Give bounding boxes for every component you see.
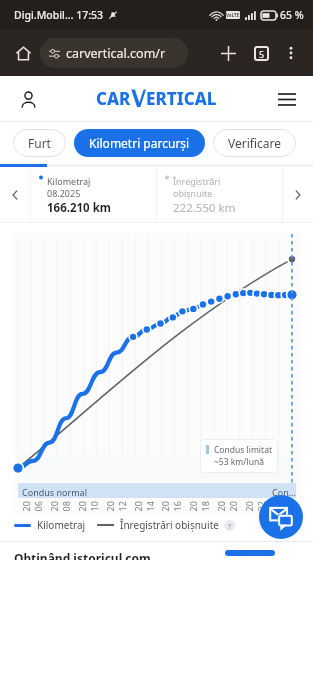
staticText: Kilometraj bbox=[47, 175, 91, 187]
staticText: Condus normal bbox=[22, 486, 87, 498]
staticText: 2016 bbox=[158, 496, 182, 511]
staticText: 2008 bbox=[47, 496, 71, 511]
button[interactable]: New tab bbox=[214, 39, 242, 67]
button[interactable]: Home bbox=[8, 38, 38, 68]
staticText: 2024 bbox=[270, 496, 294, 511]
staticText: Kilometri parcurși bbox=[89, 135, 190, 151]
button[interactable]: More options bbox=[277, 39, 305, 67]
button[interactable]: Tabs: 5 bbox=[247, 39, 275, 67]
staticText: Kilometraj bbox=[37, 518, 86, 532]
staticText: 166.210 km bbox=[47, 200, 112, 216]
staticText: ERTICAL bbox=[146, 87, 217, 110]
staticText: Condus limitat bbox=[214, 444, 272, 456]
staticText: 2014 bbox=[131, 496, 155, 511]
button[interactable]: Help bbox=[224, 520, 235, 531]
staticText: 2012 bbox=[103, 496, 127, 511]
staticText: carvertical.com/r bbox=[66, 45, 166, 62]
button[interactable]: Next bbox=[283, 167, 313, 222]
staticText: VoLTE bbox=[226, 12, 240, 18]
staticText: Con… bbox=[272, 486, 296, 498]
button[interactable]: Contact support bbox=[259, 495, 303, 539]
staticText: obișnuite bbox=[173, 187, 213, 199]
button[interactable]: Account bbox=[14, 85, 42, 113]
staticText: 2010 bbox=[75, 496, 99, 511]
staticText: Înregistrări obișnuite bbox=[120, 518, 219, 532]
staticText: CAR bbox=[96, 87, 131, 110]
staticText: 2006 bbox=[19, 496, 43, 511]
button[interactable]: Verificare bbox=[213, 129, 296, 157]
staticText: 2018 bbox=[186, 496, 210, 511]
staticText: ? bbox=[228, 521, 232, 531]
button[interactable]: carvertical.com/r bbox=[40, 38, 188, 68]
staticText: 222.550 km bbox=[173, 200, 236, 216]
staticText: 65 % bbox=[280, 8, 304, 22]
button[interactable]: Furt bbox=[13, 129, 66, 157]
staticText: 5 bbox=[259, 48, 265, 60]
button[interactable]: Înregistrări bbox=[157, 167, 282, 222]
staticText: 2022 bbox=[242, 496, 266, 511]
staticText: Furt bbox=[28, 135, 51, 151]
staticText: Obținând istoricul com bbox=[14, 550, 151, 560]
button[interactable]: Previous bbox=[0, 167, 30, 222]
button[interactable]: Kilometri parcurși bbox=[74, 129, 205, 157]
staticText: ~53 km/lună bbox=[214, 456, 264, 468]
staticText: Digi.Mobil… 17:53 bbox=[14, 8, 104, 22]
button[interactable]: Menu bbox=[273, 85, 301, 113]
staticText: 08.2025 bbox=[47, 187, 81, 199]
button[interactable]: Kilometraj bbox=[31, 167, 156, 222]
staticText: Verificare bbox=[228, 135, 281, 151]
staticText: Înregistrări bbox=[173, 175, 221, 187]
staticText: 2020 bbox=[214, 496, 238, 511]
